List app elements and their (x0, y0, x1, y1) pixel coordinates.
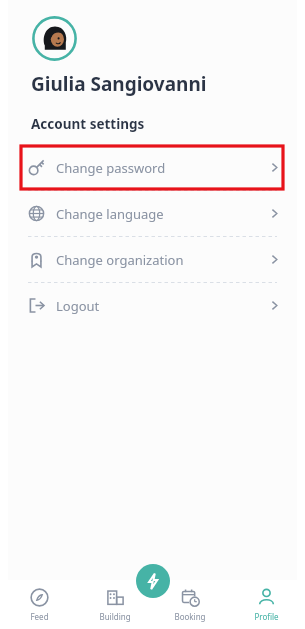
staticText: Logout (56, 297, 100, 315)
button[interactable]: Quick action (136, 564, 170, 598)
button[interactable]: Booking (154, 580, 226, 629)
staticText: Account settings (31, 115, 145, 133)
button[interactable]: Logout (0, 283, 305, 328)
staticText: Building (99, 611, 131, 622)
staticText: Change organization (56, 251, 184, 269)
staticText: Booking (174, 611, 206, 622)
staticText: Giulia Sangiovanni (31, 71, 207, 97)
button[interactable]: Profile (230, 580, 302, 629)
staticText: Change password (56, 159, 166, 177)
button[interactable]: Feed (3, 580, 75, 629)
button[interactable]: Change language (0, 191, 305, 236)
staticText: Profile (254, 611, 279, 622)
staticText: Change language (56, 205, 164, 223)
button[interactable]: Change password (0, 145, 305, 190)
button[interactable]: Building (79, 580, 151, 629)
staticText: Feed (30, 611, 49, 622)
button[interactable]: Change organization (0, 237, 305, 282)
